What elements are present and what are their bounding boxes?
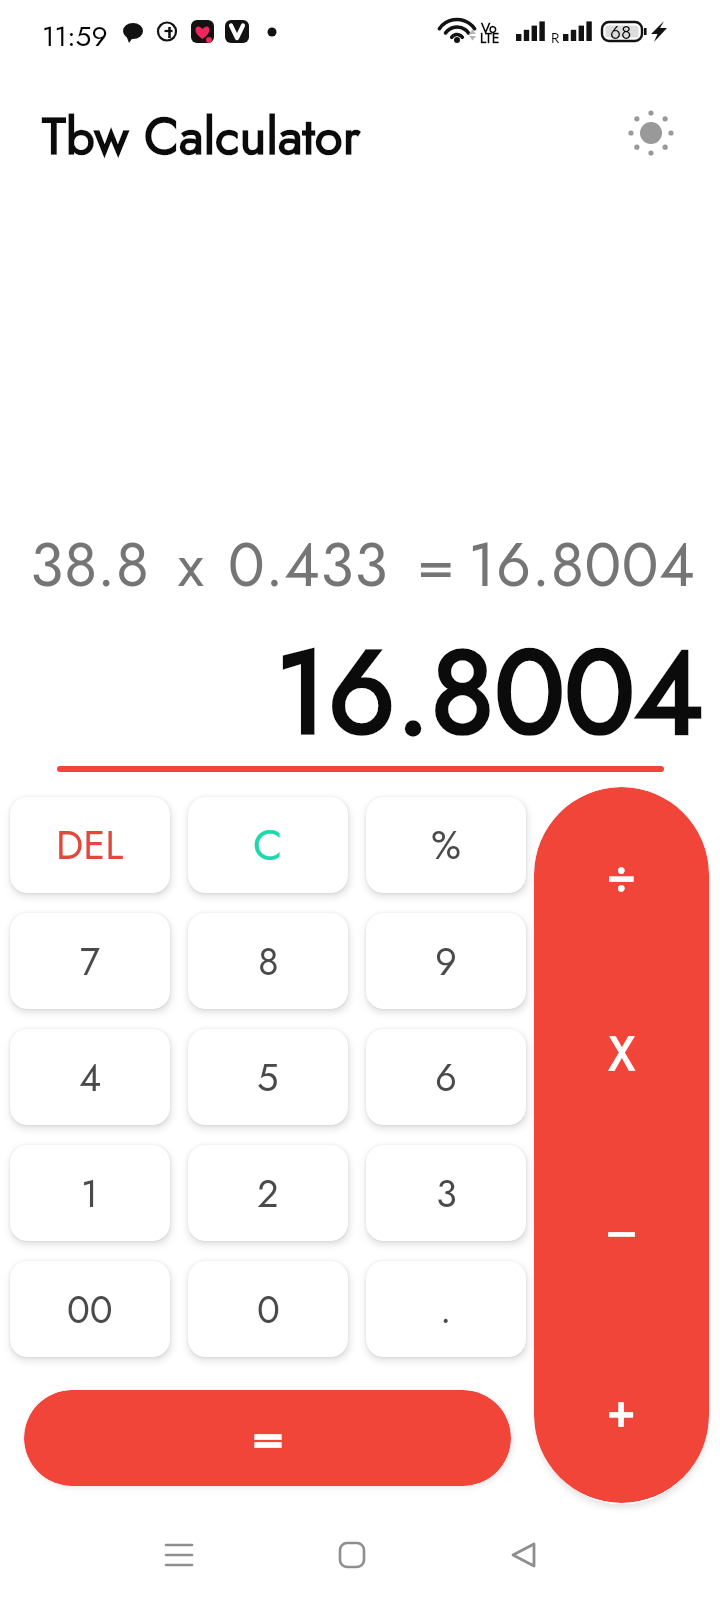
button[interactable]: 6 <box>366 1029 526 1125</box>
staticText: 3 <box>436 1166 457 1221</box>
button[interactable]: Recent apps <box>149 1525 209 1585</box>
button[interactable]: C <box>188 797 348 893</box>
staticText: LTE <box>480 28 500 48</box>
button[interactable]: 7 <box>10 913 170 1009</box>
staticText: Vo <box>481 18 497 38</box>
staticText: + <box>607 1377 636 1443</box>
button[interactable]: DEL <box>10 797 170 893</box>
button[interactable]: ÷ <box>534 787 709 965</box>
staticText: = <box>417 521 456 609</box>
staticText: 9 <box>435 934 457 989</box>
button[interactable]: – <box>534 1141 709 1319</box>
staticText: 1 <box>81 1166 99 1221</box>
staticText: 38.8 <box>30 521 150 609</box>
button[interactable]: Brightness <box>620 102 682 164</box>
button[interactable]: 2 <box>188 1145 348 1241</box>
staticText: 2 <box>257 1166 279 1221</box>
staticText: . <box>440 1282 452 1337</box>
staticText: 16.8004 <box>0 608 703 777</box>
staticText: 00 <box>67 1282 113 1337</box>
staticText: 5 <box>257 1050 279 1105</box>
staticText: x <box>178 521 205 609</box>
button[interactable]: X <box>534 965 709 1143</box>
staticText: Tbw Calculator <box>42 99 361 173</box>
staticText: = <box>252 1398 284 1473</box>
button[interactable]: 9 <box>366 913 526 1009</box>
staticText: ÷ <box>607 843 636 909</box>
staticText: DEL <box>56 816 124 874</box>
button[interactable]: 5 <box>188 1029 348 1125</box>
button[interactable]: Back <box>494 1525 554 1585</box>
button[interactable]: Home <box>322 1525 382 1585</box>
staticText: 7 <box>80 934 100 989</box>
staticText: 0.433 <box>228 521 389 609</box>
staticText: 8 <box>258 934 279 989</box>
button[interactable]: 4 <box>10 1029 170 1125</box>
staticText: 6 <box>435 1050 457 1105</box>
staticText: – <box>606 1200 638 1261</box>
button[interactable]: 8 <box>188 913 348 1009</box>
button[interactable]: 00 <box>10 1261 170 1357</box>
button[interactable]: 0 <box>188 1261 348 1357</box>
staticText: 0 <box>257 1282 280 1337</box>
staticText: 68 <box>610 19 632 46</box>
button[interactable]: % <box>366 797 526 893</box>
staticText: 4 <box>79 1050 102 1105</box>
staticText: X <box>609 1021 635 1087</box>
button[interactable]: = <box>24 1390 511 1486</box>
staticText: R <box>551 27 560 49</box>
button[interactable]: 3 <box>366 1145 526 1241</box>
staticText: 11:59 <box>42 16 108 56</box>
button[interactable]: + <box>534 1321 709 1499</box>
staticText: C <box>253 814 283 876</box>
button[interactable]: 1 <box>10 1145 170 1241</box>
staticText: % <box>431 816 462 874</box>
staticText: 16.8004 <box>468 521 696 609</box>
button[interactable]: . <box>366 1261 526 1357</box>
